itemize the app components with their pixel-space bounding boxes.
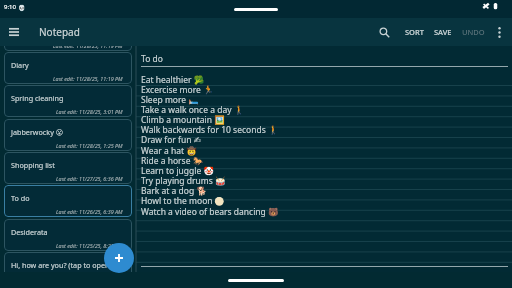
button[interactable]: More options — [492, 20, 506, 44]
button[interactable]: Jabberwocky 😮 — [4, 119, 132, 151]
staticText: Last edit: 11/27/25, 6:36 PM — [56, 175, 123, 182]
staticText: Last edit: 11/26/25, 6:39 AM — [56, 208, 123, 215]
staticText: Last edit: 11/28/25, 1:25 PM — [56, 142, 123, 149]
button[interactable]: Search — [373, 19, 395, 45]
staticText: Eat healthier 🥦 Excercise more 🏃 Sleep m… — [141, 75, 279, 217]
staticText: Last edit: 11/25/25, 8:21 AM — [56, 242, 123, 249]
staticText: Hi, how are you? (tap to open) — [11, 260, 112, 270]
button[interactable]: Menu — [0, 18, 28, 46]
staticText: Shopping list — [11, 160, 55, 170]
staticText: Notepad — [39, 25, 80, 39]
staticText: SAVE — [434, 27, 452, 37]
staticText: Jabberwocky 😮 — [11, 127, 64, 137]
staticText: 💀 — [18, 4, 26, 11]
staticText: Desiderata — [11, 227, 48, 237]
staticText: 9:10 — [4, 3, 16, 11]
button[interactable]: Diary — [4, 52, 132, 84]
button[interactable]: Shopping list — [4, 152, 132, 184]
staticText: Spring cleaning — [11, 93, 64, 103]
staticText: Diary — [11, 60, 29, 70]
staticText: UNDO — [462, 27, 485, 37]
staticText: To do — [141, 53, 163, 65]
button[interactable]: Desiderata — [4, 219, 132, 251]
staticText: SORT — [405, 27, 424, 37]
staticText: To do — [11, 193, 30, 203]
button[interactable]: SORT — [400, 18, 429, 46]
staticText: Last edit: 11/28/25, 3:01 PM — [56, 108, 123, 115]
button[interactable]: Untitled — [4, 46, 132, 51]
button[interactable]: New note — [104, 243, 134, 273]
button[interactable]: Hi, how are you? (tap to open) — [4, 252, 132, 272]
button[interactable]: Spring cleaning — [4, 85, 132, 117]
button[interactable]: SAVE — [429, 18, 457, 46]
button[interactable]: UNDO — [457, 18, 490, 46]
staticText: Last edit: 11/28/25, 11:19 PM — [53, 75, 123, 82]
button[interactable]: To do — [4, 185, 132, 217]
staticText: Last edit: 11/28/25, 11:19 PM — [53, 46, 123, 49]
